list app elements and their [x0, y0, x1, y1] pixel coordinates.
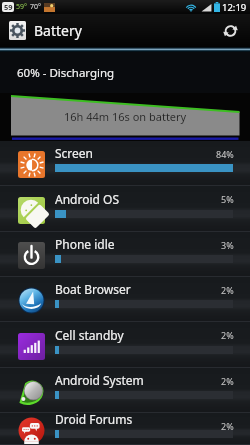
button[interactable]: Droid Forums: [0, 413, 250, 445]
staticText: Android System: [55, 372, 144, 388]
button[interactable]: Phone idle: [0, 232, 250, 277]
button[interactable]: Boat Browser: [0, 277, 250, 322]
button[interactable]: Android System: [0, 368, 250, 413]
staticText: Screen: [55, 145, 94, 161]
staticText: 59°: [16, 2, 28, 12]
staticText: 60% - Discharging: [17, 65, 115, 81]
staticText: 2%: [221, 329, 234, 341]
button[interactable]: 16h 44m 16s on battery: [0, 93, 250, 141]
staticText: 84%: [216, 148, 234, 160]
staticText: Droid Forums: [55, 411, 133, 427]
staticText: Android OS: [55, 191, 119, 207]
staticText: 16h 44m 16s on battery: [64, 109, 187, 124]
staticText: 59: [4, 2, 13, 12]
staticText: Boat Browser: [55, 281, 131, 297]
staticText: Battery: [34, 21, 82, 40]
button[interactable]: Refresh: [214, 14, 247, 47]
staticText: Cell standby: [55, 327, 124, 343]
staticText: 2%: [221, 375, 234, 387]
staticText: 12:19: [222, 1, 247, 14]
staticText: Phone idle: [55, 236, 115, 252]
staticText: 70°: [30, 2, 42, 12]
button[interactable]: Screen: [0, 141, 250, 186]
staticText: 2%: [221, 284, 234, 296]
staticText: 3%: [221, 239, 234, 251]
button[interactable]: Android OS: [0, 186, 250, 232]
staticText: 5%: [221, 193, 234, 205]
button[interactable]: Cell standby: [0, 322, 250, 368]
staticText: 2%: [221, 420, 234, 432]
